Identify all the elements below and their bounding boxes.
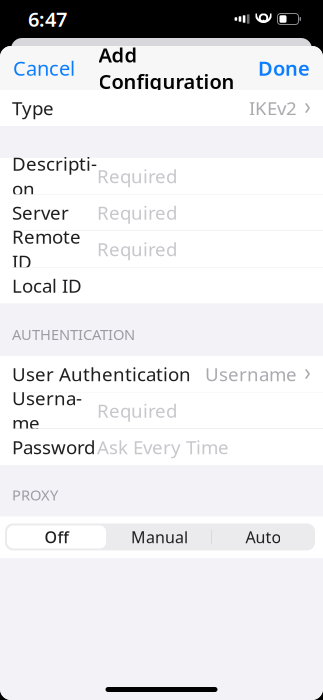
button[interactable]: User Authentication [0, 356, 323, 392]
staticText: Required [97, 164, 177, 188]
staticText: 6:47 [28, 6, 67, 32]
staticText: Username [12, 386, 82, 435]
staticText: PROXY [12, 485, 58, 504]
staticText: Required [97, 200, 177, 225]
staticText: Required [97, 398, 177, 423]
staticText: Server [12, 200, 69, 225]
button[interactable]: Done [246, 46, 323, 90]
staticText: Description [12, 151, 97, 201]
button[interactable]: Manual [108, 523, 211, 550]
staticText: Manual [131, 526, 188, 547]
staticText: Done [258, 55, 310, 81]
staticText: Off [44, 526, 68, 547]
staticText: Add Configuration [98, 41, 234, 94]
staticText: Remote ID [12, 224, 81, 274]
button[interactable]: Cancel [0, 46, 87, 90]
staticText: Type [12, 96, 54, 120]
staticText: Local ID [12, 273, 82, 298]
staticText: AUTHENTICATION [12, 324, 135, 344]
staticText: IKEv2 [249, 96, 297, 120]
staticText: Auto [245, 526, 281, 547]
staticText: User Authentication [12, 362, 191, 386]
staticText: Password [12, 435, 95, 459]
button[interactable]: Auto [212, 523, 315, 550]
staticText: Username [205, 362, 297, 386]
staticText: Required [97, 237, 177, 261]
staticText: Ask Every Time [97, 435, 229, 459]
button[interactable]: Off [7, 525, 106, 548]
staticText: Cancel [13, 55, 75, 81]
button[interactable]: Type [0, 90, 323, 126]
